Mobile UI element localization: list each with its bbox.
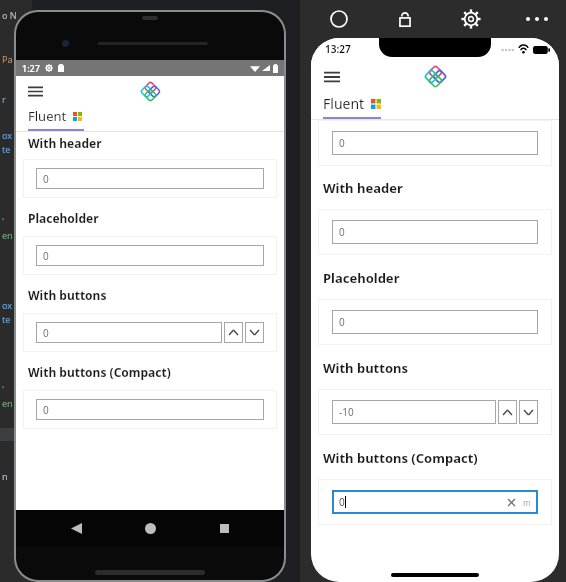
staticText: r [2, 93, 6, 105]
staticText: 1:27 [22, 62, 40, 74]
button[interactable]: Recents [210, 514, 238, 542]
staticText: With buttons (Compact) [323, 449, 559, 467]
button[interactable]: 0 [36, 399, 264, 420]
staticText: o N [2, 9, 17, 21]
staticText: en [2, 397, 13, 409]
button[interactable]: Decrement [519, 400, 538, 424]
staticText: Placeholder [323, 269, 559, 287]
staticText: 0 [43, 172, 49, 186]
staticText: n [2, 470, 8, 482]
button[interactable]: Power [324, 4, 354, 34]
button[interactable]: Increment [224, 322, 243, 343]
staticText: 0 [43, 326, 49, 340]
staticText: Placeholder [28, 210, 284, 226]
staticText: Pa [2, 53, 13, 65]
button[interactable]: Back [62, 514, 90, 542]
staticText: 0 [339, 495, 345, 509]
staticText: With buttons (Compact) [28, 364, 284, 380]
staticText: ' [2, 215, 5, 227]
staticText: ox [2, 299, 13, 311]
button[interactable]: 0 [36, 245, 264, 266]
staticText: 0 [43, 249, 49, 263]
button[interactable]: 0 [332, 310, 538, 334]
button[interactable]: 0 [332, 490, 538, 514]
staticText: With buttons [28, 287, 284, 303]
staticText: 13:27 [325, 42, 351, 56]
staticText: ox [2, 129, 13, 141]
button[interactable]: 0 [36, 322, 222, 343]
button[interactable]: -10 [332, 400, 496, 424]
button[interactable]: Clear [505, 496, 517, 508]
button[interactable]: 0 [332, 131, 538, 155]
button[interactable]: Fluent [16, 106, 96, 129]
staticText: With header [323, 179, 559, 197]
staticText: 0 [339, 315, 345, 329]
button[interactable]: Increment [498, 400, 517, 424]
button[interactable]: More options [522, 4, 552, 34]
staticText: With buttons [323, 359, 559, 377]
staticText: With header [28, 135, 284, 151]
button[interactable]: Fluent [311, 93, 395, 117]
button[interactable]: Menu [23, 79, 47, 103]
button[interactable]: Menu [319, 64, 345, 90]
staticText: m [523, 497, 531, 508]
staticText: -10 [339, 405, 354, 419]
staticText: 0 [339, 225, 345, 239]
staticText: en [2, 229, 13, 241]
button[interactable]: Home [136, 514, 164, 542]
button[interactable]: Lock [390, 4, 420, 34]
staticText: te [2, 313, 11, 325]
button[interactable]: Settings [456, 4, 486, 34]
staticText: 0 [43, 403, 49, 417]
staticText: 0 [339, 136, 345, 150]
button[interactable]: 0 [36, 168, 264, 189]
staticText: te [2, 143, 11, 155]
staticText: ' [2, 383, 5, 395]
staticText: Fluent [28, 107, 67, 125]
staticText: Fluent [323, 94, 365, 113]
button[interactable]: 0 [332, 220, 538, 244]
button[interactable]: Decrement [245, 322, 264, 343]
